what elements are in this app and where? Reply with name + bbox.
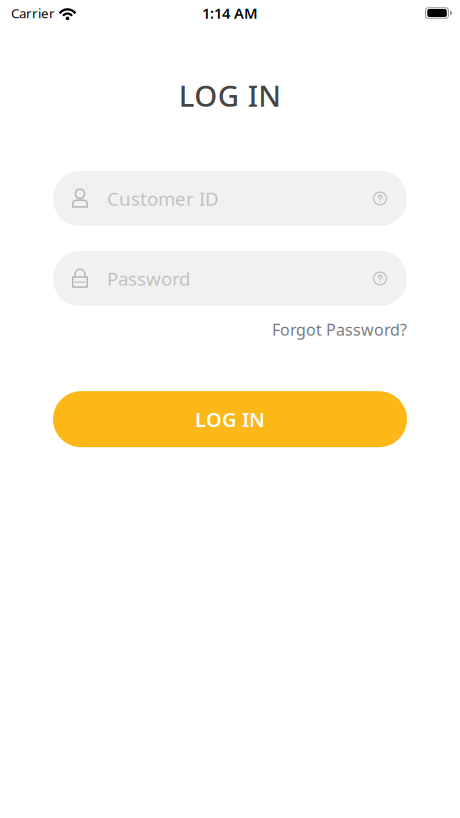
button[interactable]: Help with Customer ID [362,171,398,226]
button[interactable]: Forgot Password? [272,315,407,344]
staticText: 1:14 AM [202,3,258,23]
staticText: LOG IN [179,76,281,115]
staticText: Password [107,266,190,291]
staticText: Carrier [11,4,55,22]
button[interactable]: Password [53,251,362,306]
button[interactable]: Help with Password [362,251,398,306]
staticText: LOG IN [195,406,265,432]
button[interactable]: Customer ID [53,171,362,226]
staticText: Customer ID [107,186,219,211]
button[interactable]: LOG IN [53,391,407,447]
staticText: Forgot Password? [272,319,407,340]
